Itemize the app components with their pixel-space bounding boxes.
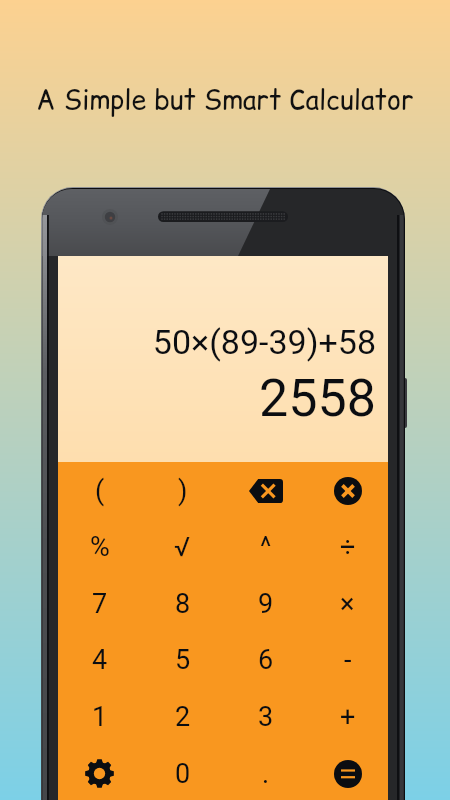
button[interactable]: 7 [58,575,141,632]
other: Settings [85,759,114,788]
staticText: ^ [260,531,272,563]
button[interactable]: 3 [224,688,307,745]
staticText: 2 [175,701,191,733]
button[interactable]: - [307,631,388,688]
staticText: 9 [258,588,274,620]
staticText: 1 [92,701,108,733]
button[interactable]: 6 [224,631,307,688]
staticText: 7 [92,588,108,620]
staticText: - [344,644,352,676]
staticText: 4 [92,644,108,676]
button[interactable]: ÷ [307,518,388,575]
staticText: + [340,701,356,733]
button[interactable]: ) [141,462,224,519]
staticText: 50×(89-39)+58 [58,322,376,362]
button[interactable]: √ [141,518,224,575]
button[interactable]: 8 [141,575,224,632]
staticText: 6 [258,644,274,676]
staticText: √ [174,531,191,563]
button[interactable]: Equals [307,745,388,800]
button[interactable]: × [307,575,388,632]
staticText: 5 [175,644,191,676]
other: Equals [334,760,362,788]
button[interactable]: ^ [224,518,307,575]
staticText: 8 [175,588,191,620]
staticText: 0 [175,758,191,790]
staticText: % [90,531,110,563]
staticText: × [340,588,355,620]
button[interactable]: 9 [224,575,307,632]
button[interactable]: Clear [307,462,388,519]
button[interactable]: 2 [141,688,224,745]
button[interactable]: Backspace [224,462,307,519]
other: Backspace [249,479,283,503]
button[interactable]: Settings [58,745,141,800]
button[interactable]: . [224,745,307,800]
staticText: ÷ [340,531,356,563]
button[interactable]: ( [58,462,141,519]
staticText: ( [95,475,105,507]
staticText: 2558 [58,368,376,429]
button[interactable]: + [307,688,388,745]
button[interactable]: 4 [58,631,141,688]
staticText: . [262,758,270,790]
button[interactable]: 1 [58,688,141,745]
staticText: 3 [258,701,274,733]
button[interactable]: 0 [141,745,224,800]
staticText: ) [178,475,188,507]
other: Clear [334,477,362,505]
button[interactable]: 5 [141,631,224,688]
staticText: A Simple but Smart Calculator [0,81,450,118]
button[interactable]: % [58,518,141,575]
